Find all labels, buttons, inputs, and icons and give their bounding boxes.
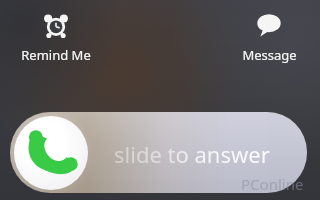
button[interactable]: Remind Me	[14, 8, 98, 66]
staticText: PConline	[241, 174, 304, 194]
button[interactable]: Answer call	[14, 116, 88, 190]
staticText: Message	[242, 46, 297, 64]
staticText: slide to answer	[114, 139, 270, 169]
staticText: Remind Me	[21, 46, 91, 64]
button[interactable]: Message	[230, 8, 308, 66]
button[interactable]: slide to answer	[10, 112, 307, 193]
